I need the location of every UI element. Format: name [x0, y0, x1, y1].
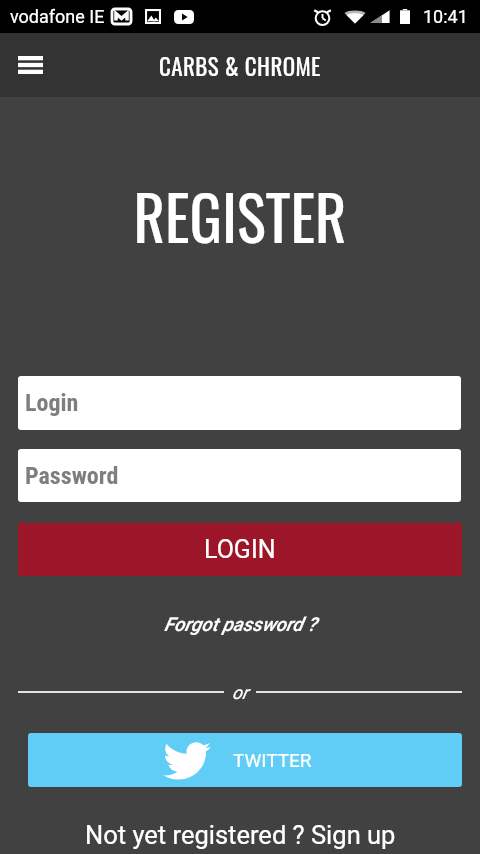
staticText: CARBS & CHROME: [159, 49, 321, 83]
staticText: Password: [25, 462, 119, 490]
staticText: Forgot password ?: [164, 613, 317, 635]
staticText: Login: [25, 389, 79, 417]
staticText: or: [232, 682, 248, 703]
button[interactable]: Not yet registered ? Sign up: [85, 820, 396, 850]
staticText: LOGIN: [204, 535, 276, 564]
button[interactable]: LOGIN: [18, 523, 462, 576]
staticText: Not yet registered ? Sign up: [85, 820, 396, 850]
button[interactable]: Forgot password ?: [150, 608, 331, 640]
button[interactable]: Password: [18, 449, 461, 502]
button[interactable]: Open navigation menu: [8, 43, 52, 87]
staticText: vodafone IE: [10, 6, 105, 27]
staticText: TWITTER: [233, 749, 312, 771]
button[interactable]: Login: [18, 376, 461, 430]
staticText: 10:41: [423, 6, 468, 27]
staticText: REGISTER: [133, 171, 347, 261]
button[interactable]: TWITTER: [28, 733, 462, 787]
